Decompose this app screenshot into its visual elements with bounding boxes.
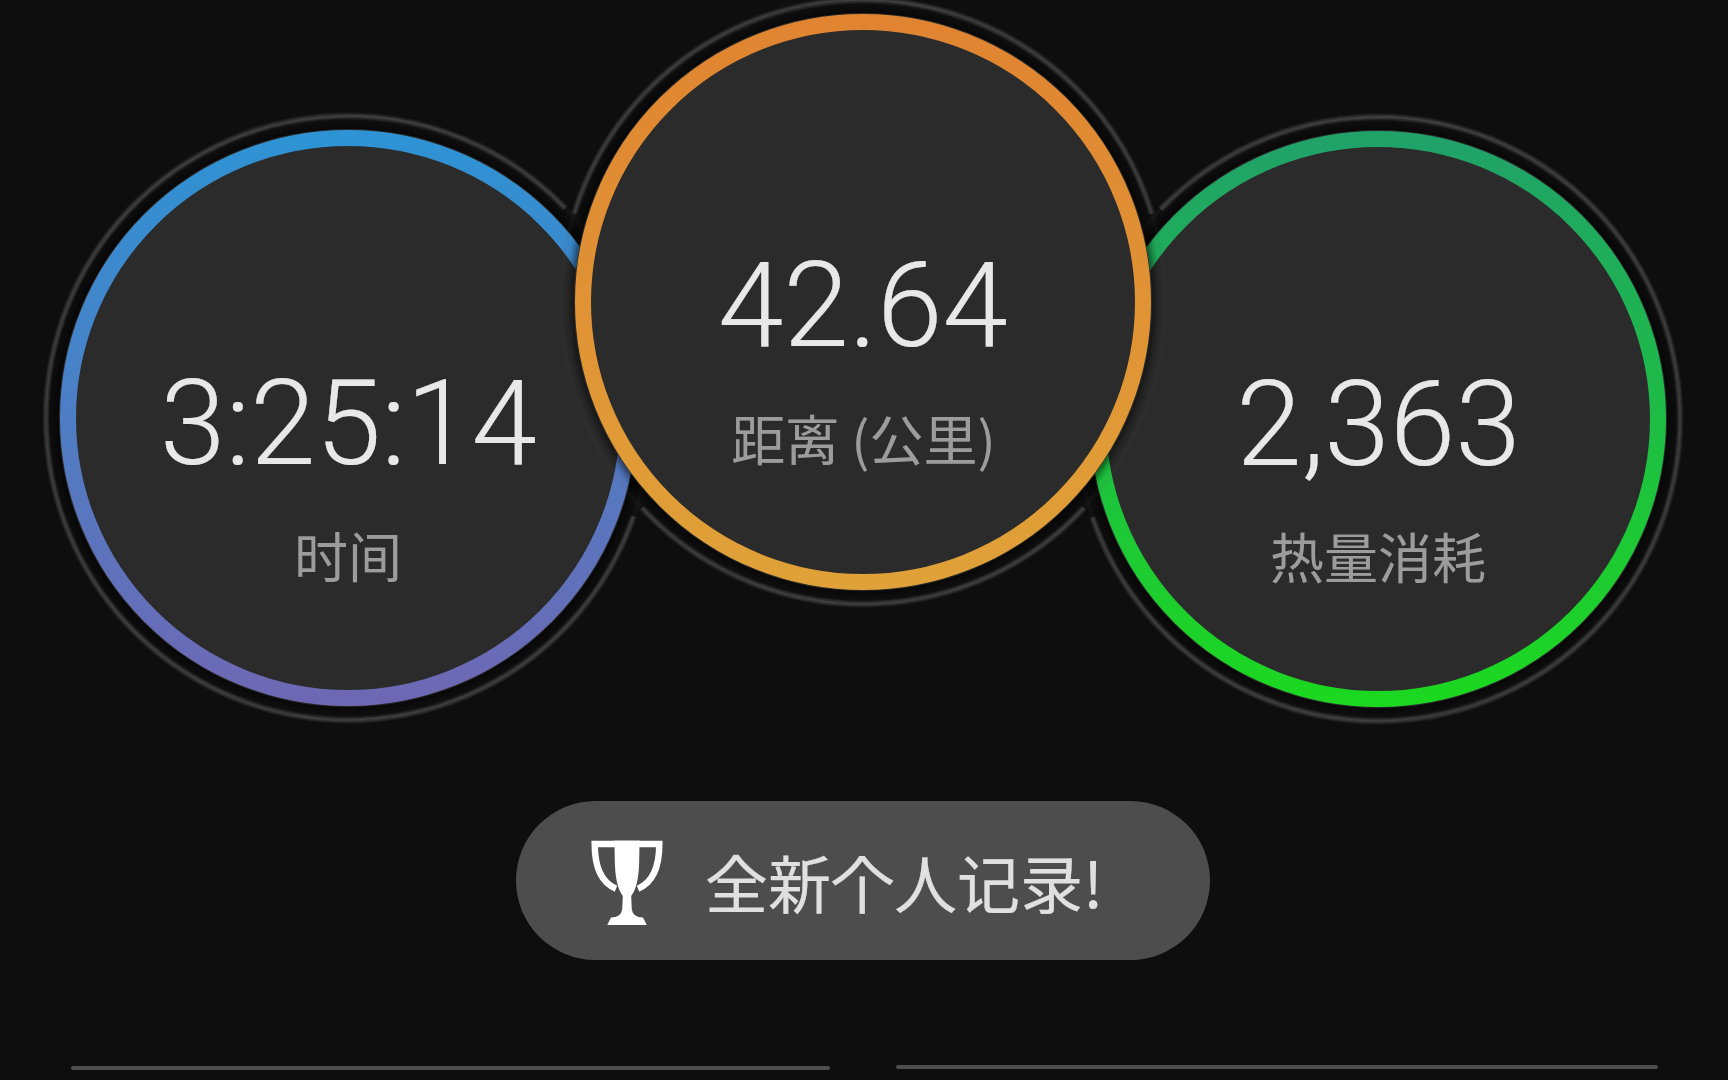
staticText: 42.64 [718, 237, 1008, 375]
staticText: 3:25:14 [160, 355, 537, 493]
staticText: 全新个人记录! [705, 835, 1104, 926]
button[interactable]: Trophy [516, 801, 1210, 960]
staticText: 2,363 [1236, 356, 1521, 494]
button[interactable]: Distance 42.64 kilometres [557, 0, 1169, 608]
button[interactable]: Calories 2,363 [1072, 113, 1684, 725]
button[interactable]: Duration 3:25:14 [42, 112, 654, 724]
staticText: 时间 [294, 515, 402, 593]
staticText: 热量消耗 [1270, 516, 1486, 594]
other: Trophy [589, 836, 665, 926]
staticText: 距离 (公里) [731, 398, 996, 476]
